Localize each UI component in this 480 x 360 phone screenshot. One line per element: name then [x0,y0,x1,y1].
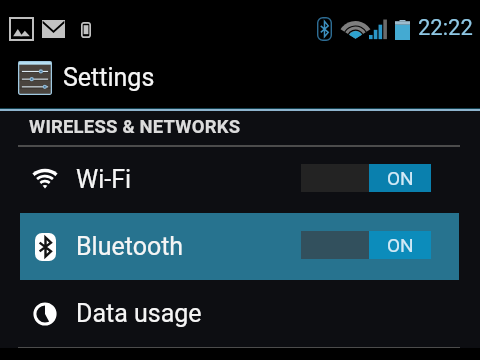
staticText: 22:22 [418,15,473,41]
button[interactable]: Turn Bluetooth off [301,231,431,259]
button[interactable]: Wi-Fi [20,146,459,213]
staticText: ON [387,167,414,189]
staticText: ON [387,234,414,256]
staticText: Bluetooth [76,232,184,261]
button[interactable]: Bluetooth [20,213,459,280]
button[interactable]: Settings [0,47,480,108]
staticText: Data usage [76,299,202,328]
staticText: WIRELESS & NETWORKS [29,116,241,138]
staticText: Wi-Fi [76,165,132,194]
staticText: Settings [63,63,155,92]
button[interactable]: Turn Wi-Fi off [301,164,431,192]
button[interactable]: Data usage [20,280,459,347]
